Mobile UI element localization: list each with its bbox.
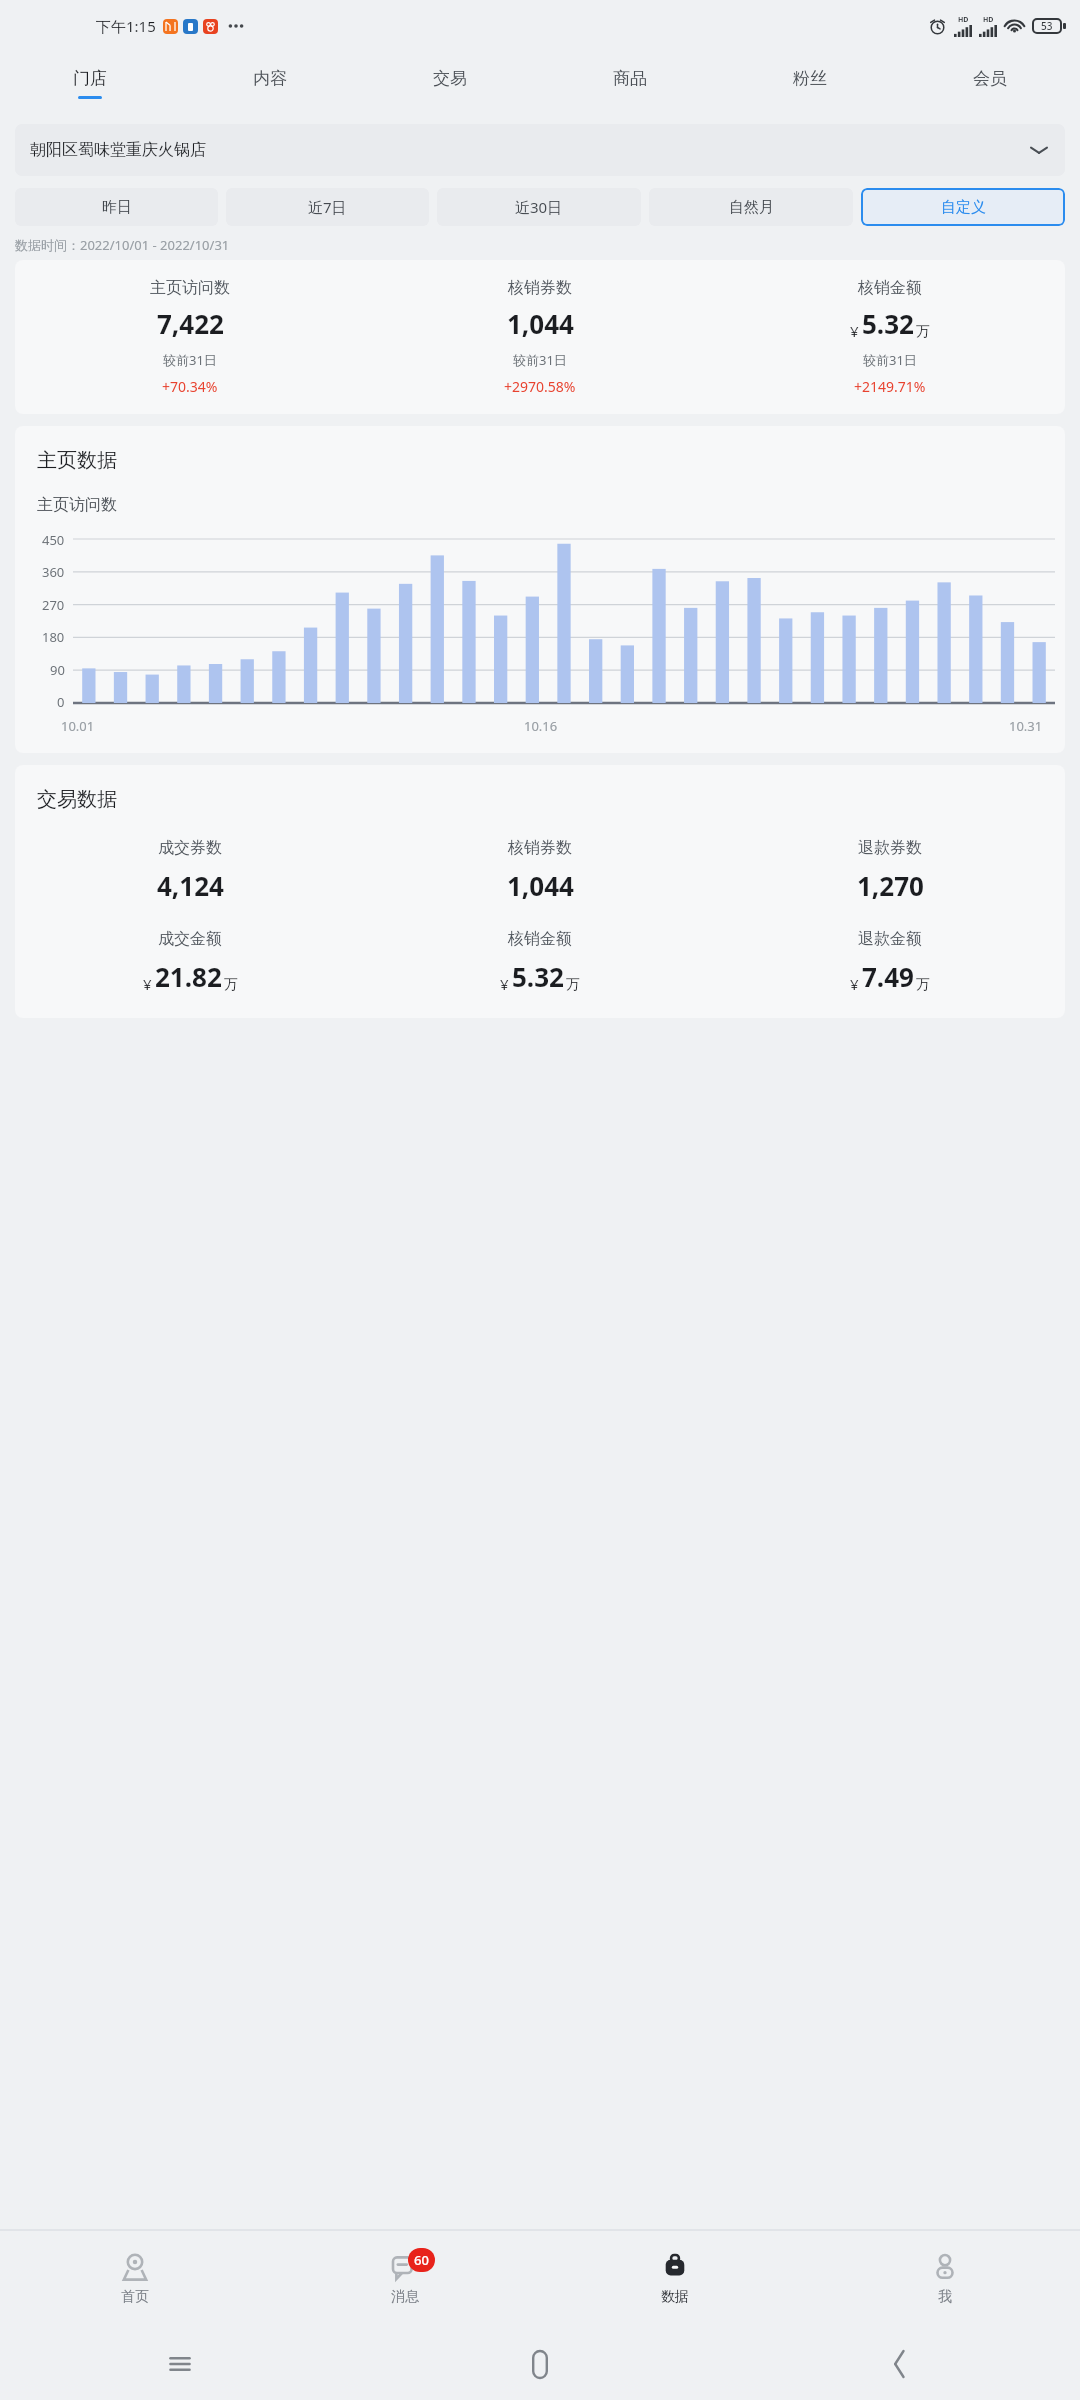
button[interactable]: 60: [270, 2230, 540, 2328]
staticText: 万: [566, 976, 580, 994]
staticText: 1,270: [857, 868, 924, 903]
staticText: 360: [42, 563, 65, 581]
staticText: 180: [42, 628, 65, 646]
button[interactable]: 内容: [180, 52, 360, 114]
staticText: 21.82: [155, 959, 222, 994]
staticText: 内容: [253, 68, 287, 89]
staticText: 门店: [73, 68, 107, 89]
staticText: 核销券数: [508, 838, 572, 858]
staticText: 5.32: [512, 959, 564, 994]
staticText: 核销券数: [508, 278, 572, 298]
staticText: 数据: [661, 2288, 689, 2306]
staticText: ¥: [850, 321, 859, 341]
staticText: 7.49: [862, 959, 914, 994]
button[interactable]: 交易: [360, 52, 540, 114]
staticText: 5.32: [862, 306, 914, 341]
button[interactable]: 我: [810, 2230, 1080, 2328]
staticText: ¥: [850, 974, 859, 994]
staticText: 近30日: [515, 197, 563, 217]
button[interactable]: Back: [720, 2328, 1080, 2400]
staticText: 10.01: [61, 717, 95, 735]
staticText: 自然月: [729, 198, 774, 217]
staticText: 朝阳区蜀味堂重庆火锅店: [30, 140, 206, 160]
staticText: 主页数据: [37, 448, 117, 473]
staticText: 270: [42, 596, 65, 614]
staticText: 核销金额: [858, 278, 922, 298]
staticText: 交易: [433, 68, 467, 89]
staticText: 1,044: [507, 868, 574, 903]
staticText: 成交金额: [158, 929, 222, 949]
staticText: 昨日: [102, 198, 132, 217]
button[interactable]: 近7日: [226, 188, 429, 226]
staticText: 7,422: [157, 306, 224, 341]
button[interactable]: 首页: [0, 2230, 270, 2328]
staticText: 数据时间：2022/10/01 - 2022/10/31: [15, 236, 230, 254]
button[interactable]: 朝阳区蜀味堂重庆火锅店: [15, 124, 1065, 176]
staticText: HD: [958, 15, 969, 25]
staticText: 消息: [391, 2288, 419, 2306]
button[interactable]: 粉丝: [720, 52, 900, 114]
button[interactable]: Home: [360, 2328, 720, 2400]
button[interactable]: 自然月: [649, 188, 853, 226]
staticText: 450: [42, 531, 65, 549]
staticText: 万: [916, 976, 930, 994]
staticText: +2970.58%: [504, 377, 576, 396]
staticText: 万: [224, 976, 238, 994]
staticText: 4,124: [157, 868, 224, 903]
button[interactable]: 近30日: [437, 188, 641, 226]
staticText: ¥: [143, 974, 152, 994]
staticText: 10.31: [1009, 717, 1043, 735]
staticText: 退款券数: [858, 838, 922, 858]
staticText: 主页访问数: [150, 278, 230, 298]
staticText: 主页访问数: [37, 495, 117, 515]
button[interactable]: 数据: [540, 2230, 810, 2328]
staticText: 商品: [613, 68, 647, 89]
staticText: 53: [1041, 19, 1053, 33]
staticText: 交易数据: [37, 787, 117, 812]
staticText: 我: [938, 2288, 952, 2306]
staticText: 首页: [121, 2288, 149, 2306]
staticText: 粉丝: [793, 68, 827, 89]
button[interactable]: 自定义: [861, 188, 1065, 226]
staticText: ¥: [500, 974, 509, 994]
staticText: HD: [983, 15, 994, 25]
staticText: 会员: [973, 68, 1007, 89]
staticText: 近7日: [308, 197, 347, 217]
staticText: 较前31日: [163, 351, 217, 369]
staticText: 下午1:15: [96, 16, 156, 36]
staticText: 较前31日: [863, 351, 917, 369]
staticText: 较前31日: [513, 351, 567, 369]
staticText: 退款金额: [858, 929, 922, 949]
staticText: 90: [50, 661, 65, 679]
button[interactable]: 商品: [540, 52, 720, 114]
staticText: 核销金额: [508, 929, 572, 949]
staticText: +2149.71%: [854, 377, 926, 396]
staticText: 10.16: [524, 717, 558, 735]
staticText: +70.34%: [162, 377, 218, 396]
staticText: 万: [916, 323, 930, 341]
staticText: 自定义: [941, 198, 986, 217]
staticText: 0: [57, 693, 65, 711]
staticText: 60: [414, 2251, 429, 2269]
button[interactable]: Recents: [0, 2328, 360, 2400]
staticText: 成交券数: [158, 838, 222, 858]
button[interactable]: 会员: [900, 52, 1080, 114]
staticText: 1,044: [507, 306, 574, 341]
button[interactable]: 昨日: [15, 188, 218, 226]
button[interactable]: 门店: [0, 52, 180, 114]
